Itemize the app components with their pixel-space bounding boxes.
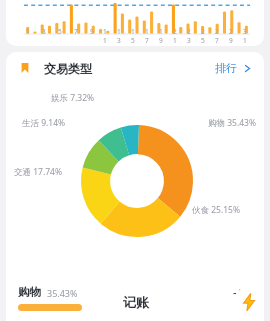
staticText: -￥7 bbox=[233, 285, 254, 300]
staticText: 27 bbox=[215, 27, 222, 45]
staticText: 9 bbox=[90, 27, 94, 36]
staticText: 23 bbox=[187, 27, 194, 45]
staticText: 13 bbox=[117, 27, 124, 45]
staticText: 3 bbox=[42, 27, 46, 36]
staticText: 35.43% bbox=[47, 287, 78, 299]
other: 书签 bbox=[16, 59, 34, 77]
staticText: 伙食 25.15% bbox=[192, 204, 240, 216]
staticText: 5 bbox=[58, 27, 62, 36]
staticText: 购物 35.43% bbox=[208, 117, 256, 129]
staticText: 生活 9.14% bbox=[22, 117, 66, 129]
staticText: 19 bbox=[159, 27, 166, 45]
staticText: 17 bbox=[145, 27, 152, 45]
button[interactable]: 快速记账 bbox=[234, 287, 264, 317]
staticText: 娱乐 7.32% bbox=[51, 92, 95, 104]
staticText: 1 bbox=[26, 27, 30, 36]
staticText: 11 bbox=[103, 27, 110, 45]
button[interactable]: 排行 bbox=[215, 61, 252, 75]
staticText: 25 bbox=[201, 27, 208, 45]
staticText: 29 bbox=[229, 27, 236, 45]
button[interactable]: 记账 bbox=[83, 287, 188, 317]
staticText: 购物 bbox=[18, 285, 41, 299]
staticText: 记账 bbox=[123, 294, 149, 310]
staticText: 15 bbox=[131, 27, 138, 45]
staticText: 排行 bbox=[215, 61, 237, 75]
staticText: 交通 17.74% bbox=[14, 166, 62, 178]
staticText: 21 bbox=[173, 27, 180, 45]
staticText: 交易类型 bbox=[44, 61, 92, 76]
staticText: 1笔 bbox=[241, 300, 254, 311]
staticText: 7 bbox=[74, 27, 78, 36]
staticText: 31 bbox=[243, 27, 250, 45]
button[interactable]: 购物 bbox=[6, 275, 264, 321]
